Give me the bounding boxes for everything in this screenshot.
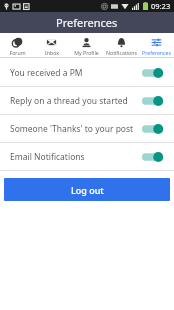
staticText: Someone 'Thanks' to your post (10, 123, 140, 135)
staticText: My Profile (74, 49, 99, 56)
button[interactable]: Toggle (140, 150, 164, 164)
staticText: Reply on a thread you started (10, 95, 140, 107)
staticText: Forum (9, 49, 26, 56)
button[interactable]: Preferences (139, 33, 174, 57)
button[interactable]: Notifications (104, 33, 139, 57)
staticText: Preferences (142, 49, 171, 56)
staticText: Notifications (106, 49, 137, 56)
button[interactable]: Log out (4, 178, 170, 201)
staticText: 09:23 (151, 1, 171, 11)
button[interactable]: Forum (0, 33, 34, 57)
staticText: You received a PM (10, 67, 140, 79)
staticText: Email Notifications (10, 151, 140, 163)
button[interactable]: Reply on a thread you started (0, 87, 174, 114)
button[interactable]: Email Notifications (0, 143, 174, 170)
button[interactable]: Inbox (34, 33, 69, 57)
button[interactable]: Someone 'Thanks' to your post (0, 115, 174, 142)
button[interactable]: Toggle (140, 122, 164, 136)
staticText: Inbox (45, 49, 59, 56)
button[interactable]: Toggle (140, 66, 164, 80)
button[interactable]: Toggle (140, 94, 164, 108)
button[interactable]: My Profile (69, 33, 104, 57)
staticText: Log out (71, 184, 104, 196)
staticText: Preferences (56, 15, 118, 30)
button[interactable]: You received a PM (0, 59, 174, 86)
